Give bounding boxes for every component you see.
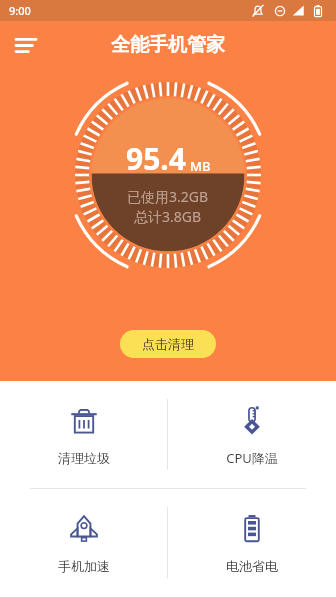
button[interactable]: 点击清理	[120, 330, 216, 358]
staticText: 已使用3.2GB	[127, 187, 209, 206]
button[interactable]: 清理垃圾	[0, 381, 167, 488]
staticText: 9:00	[9, 3, 31, 18]
staticText: 电池省电	[226, 558, 278, 574]
button[interactable]: 电池省电	[168, 489, 336, 597]
button[interactable]: Menu	[8, 27, 44, 63]
staticText: 点击清理	[142, 336, 194, 352]
staticText: CPU降温	[226, 449, 278, 467]
staticText: 95.4	[126, 138, 186, 179]
staticText: 全能手机管家	[111, 33, 225, 57]
staticText: 总计3.8GB	[134, 207, 202, 226]
staticText: 清理垃圾	[58, 450, 110, 466]
button[interactable]: CPU降温	[168, 381, 336, 488]
button[interactable]: 手机加速	[0, 489, 167, 597]
staticText: MB	[190, 157, 211, 175]
staticText: 手机加速	[58, 558, 110, 574]
